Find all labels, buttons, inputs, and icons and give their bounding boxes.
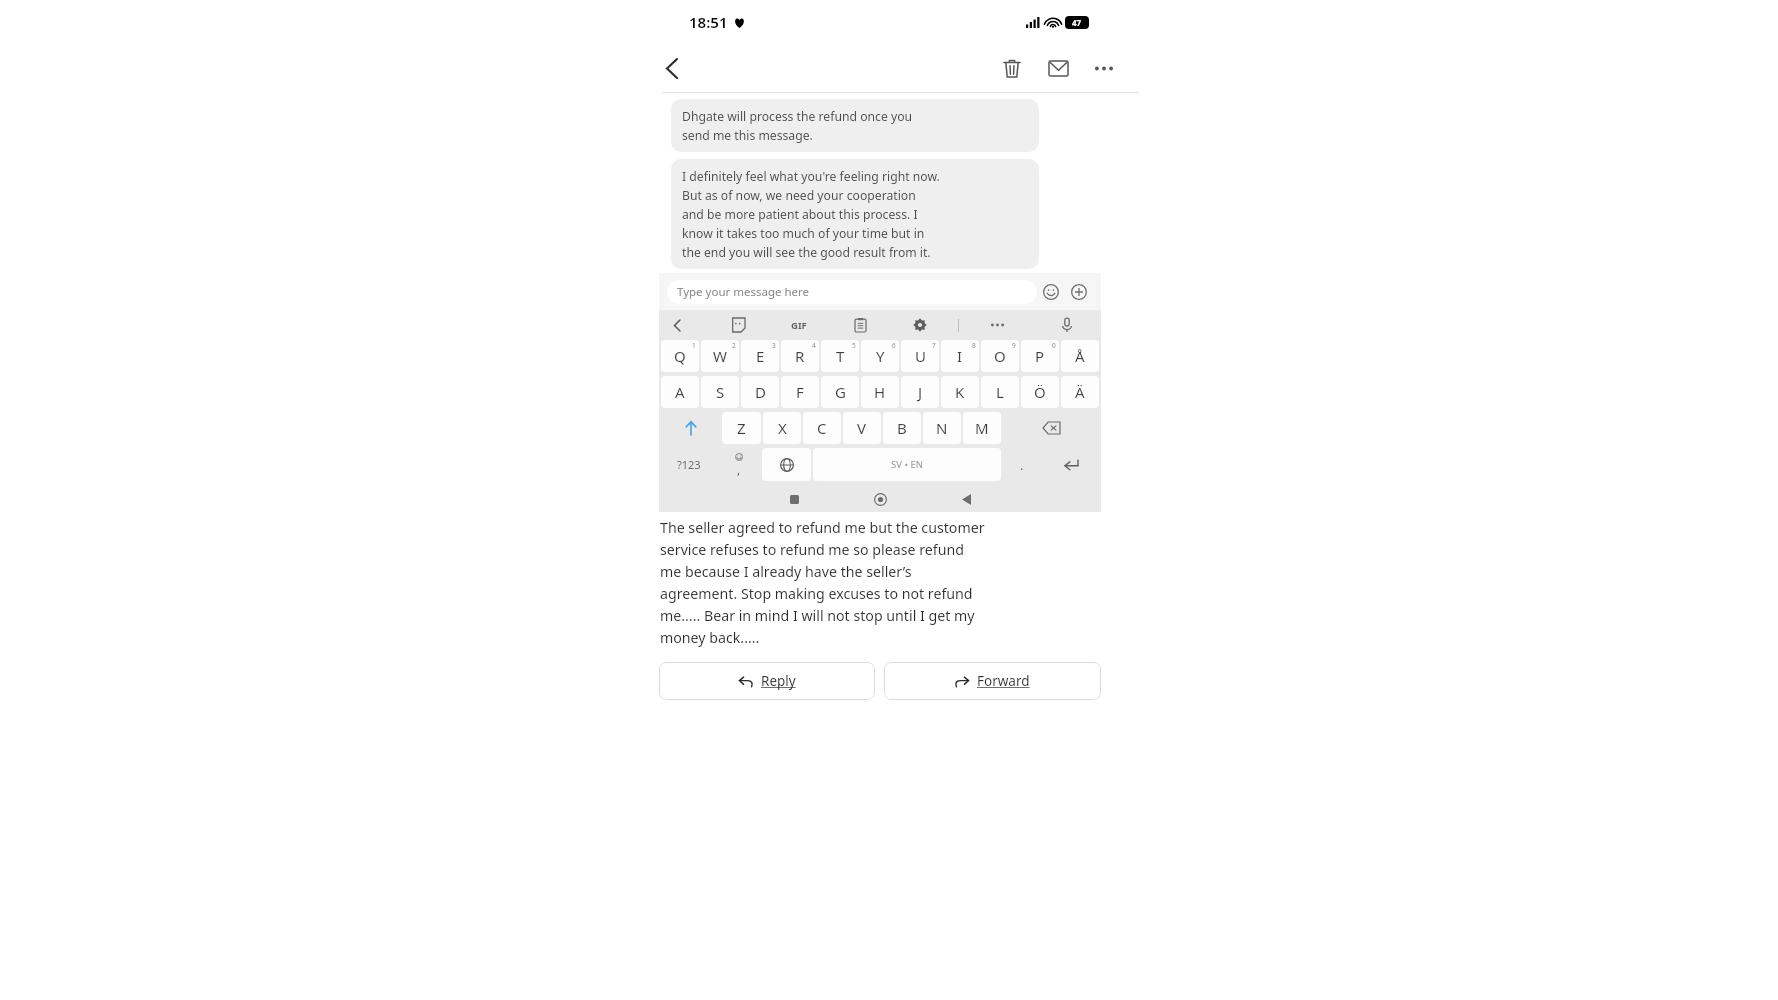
button[interactable]: Recents xyxy=(781,486,807,512)
button[interactable]: T xyxy=(821,340,859,372)
button[interactable]: G xyxy=(821,376,859,408)
staticText: GIF xyxy=(791,319,807,332)
button[interactable]: J xyxy=(901,376,939,408)
button[interactable]: Type your message here xyxy=(667,280,1037,304)
staticText: I xyxy=(957,346,963,366)
staticText: H xyxy=(874,382,886,402)
button[interactable]: M xyxy=(963,412,1001,444)
staticText: C xyxy=(817,418,827,438)
button[interactable]: More options xyxy=(1083,47,1125,89)
button[interactable]: Comma and emoji xyxy=(718,448,760,481)
staticText: 5 xyxy=(852,341,856,350)
button[interactable]: Dhgate will process the refund once you … xyxy=(671,99,1039,152)
staticText: 18:51 xyxy=(689,12,728,32)
staticText: U xyxy=(915,346,926,366)
button[interactable]: I xyxy=(941,340,979,372)
staticText: 1 xyxy=(692,341,696,350)
staticText: Reply xyxy=(761,672,796,690)
staticText: 3 xyxy=(772,341,776,350)
button[interactable]: Back xyxy=(953,486,979,512)
staticText: Z xyxy=(737,418,746,438)
staticText: 0 xyxy=(1052,341,1056,350)
button[interactable]: Collapse toolbar xyxy=(665,313,689,337)
staticText: . xyxy=(1020,456,1024,474)
staticText: P xyxy=(1035,346,1045,366)
staticText: S xyxy=(716,382,725,402)
staticText: Type your message here xyxy=(677,284,810,300)
button[interactable]: K xyxy=(941,376,979,408)
button[interactable]: S xyxy=(701,376,739,408)
button[interactable]: . xyxy=(1003,448,1041,481)
button[interactable]: Y xyxy=(861,340,899,372)
button[interactable]: R xyxy=(781,340,819,372)
button[interactable]: Stickers xyxy=(726,313,750,337)
button[interactable]: Q xyxy=(661,340,699,372)
staticText: 2 xyxy=(732,341,736,350)
button[interactable]: V xyxy=(843,412,881,444)
staticText: 6 xyxy=(892,341,896,350)
button[interactable]: F xyxy=(781,376,819,408)
staticText: ?123 xyxy=(677,457,701,472)
button[interactable]: Keyboard settings xyxy=(908,313,932,337)
button[interactable]: More xyxy=(985,313,1009,337)
button[interactable]: Enter xyxy=(1043,448,1099,481)
staticText: D xyxy=(755,382,766,402)
button[interactable]: H xyxy=(861,376,899,408)
button[interactable]: Change language xyxy=(762,448,811,481)
button[interactable]: GIF xyxy=(786,312,812,338)
button[interactable]: Z xyxy=(722,412,761,444)
button[interactable]: P xyxy=(1021,340,1059,372)
staticText: Forward xyxy=(977,672,1030,690)
button[interactable]: Back xyxy=(651,48,691,88)
staticText: E xyxy=(756,346,765,366)
button[interactable]: SV • EN xyxy=(813,448,1001,481)
button[interactable]: Å xyxy=(1061,340,1099,372)
staticText: 7 xyxy=(932,341,936,350)
button[interactable]: Voice input xyxy=(1055,313,1079,337)
button[interactable]: Emoji xyxy=(1037,278,1065,306)
staticText: 8 xyxy=(972,341,976,350)
button[interactable]: Reply xyxy=(659,662,875,700)
staticText: I definitely feel what you're feeling ri… xyxy=(682,168,940,260)
button[interactable]: N xyxy=(923,412,961,444)
button[interactable]: E xyxy=(741,340,779,372)
button[interactable]: Forward xyxy=(884,662,1101,700)
button[interactable]: L xyxy=(981,376,1019,408)
staticText: A xyxy=(675,382,685,402)
staticText: , xyxy=(737,461,741,477)
staticText: F xyxy=(796,382,804,402)
staticText: Dhgate will process the refund once you … xyxy=(682,108,913,143)
staticText: G xyxy=(835,382,846,402)
button[interactable]: Add attachment xyxy=(1065,278,1093,306)
button[interactable]: C xyxy=(803,412,841,444)
staticText: Y xyxy=(876,346,885,366)
button[interactable]: ?123 xyxy=(661,448,716,481)
staticText: 47 xyxy=(1072,17,1082,28)
staticText: Q xyxy=(674,346,686,366)
button[interactable]: O xyxy=(981,340,1019,372)
button[interactable]: A xyxy=(661,376,699,408)
staticText: J xyxy=(918,382,923,402)
button[interactable]: Ö xyxy=(1021,376,1059,408)
staticText: T xyxy=(836,346,845,366)
button[interactable]: Ä xyxy=(1061,376,1099,408)
button[interactable]: I definitely feel what you're feeling ri… xyxy=(671,159,1039,269)
button[interactable]: Clipboard xyxy=(848,313,872,337)
button[interactable]: Delete xyxy=(991,47,1033,89)
button[interactable]: Mark unread xyxy=(1037,47,1079,89)
staticText: 4 xyxy=(812,341,816,350)
staticText: The seller agreed to refund me but the c… xyxy=(660,518,1103,647)
staticText: W xyxy=(713,346,727,366)
button[interactable]: X xyxy=(763,412,801,444)
button[interactable]: Home xyxy=(867,486,893,512)
button[interactable]: U xyxy=(901,340,939,372)
staticText: M xyxy=(975,418,989,438)
staticText: Ä xyxy=(1075,382,1085,402)
button[interactable]: W xyxy=(701,340,739,372)
button[interactable]: Backspace xyxy=(1003,412,1099,444)
staticText: N xyxy=(936,418,948,438)
button[interactable]: B xyxy=(883,412,921,444)
staticText: 9 xyxy=(1012,341,1016,350)
button[interactable]: Shift xyxy=(661,412,720,444)
button[interactable]: D xyxy=(741,376,779,408)
